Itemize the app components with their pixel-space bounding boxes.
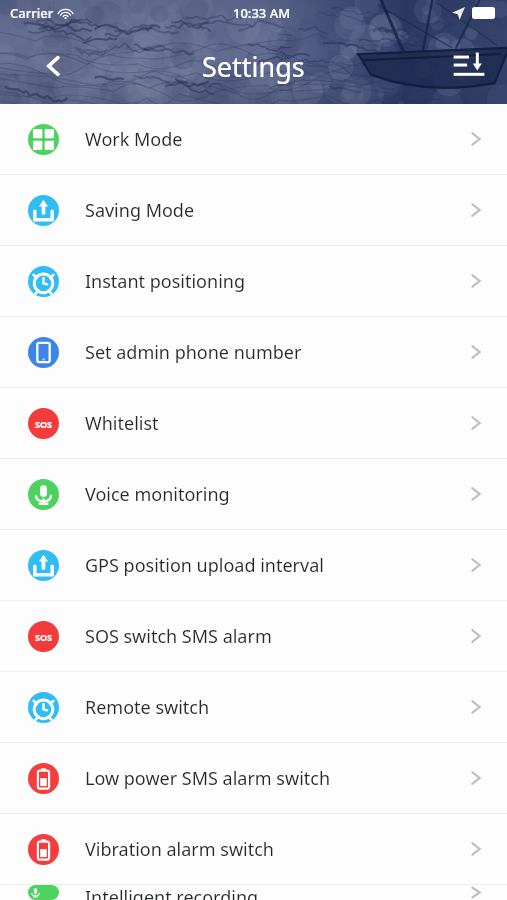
staticText: Low power SMS alarm switch (85, 766, 467, 791)
button[interactable]: Back (34, 46, 74, 86)
button[interactable]: Remote switch (0, 672, 507, 742)
staticText: SOS switch SMS alarm (85, 624, 467, 649)
button[interactable]: Vibration alarm switch (0, 814, 507, 884)
button[interactable]: SOS (0, 601, 507, 671)
button[interactable]: Intelligent recording (0, 885, 507, 900)
staticText: Voice monitoring (85, 482, 467, 507)
staticText: Saving Mode (85, 198, 467, 223)
button[interactable]: SOS (0, 388, 507, 458)
staticText: Remote switch (85, 695, 467, 720)
staticText: 10:33 AM (233, 4, 291, 22)
button[interactable]: Low power SMS alarm switch (0, 743, 507, 813)
staticText: Vibration alarm switch (85, 837, 467, 862)
button[interactable]: Instant positioning (0, 246, 507, 316)
staticText: Settings (202, 48, 305, 85)
staticText: Instant positioning (85, 269, 467, 294)
staticText: Intelligent recording (85, 885, 467, 900)
button[interactable]: GPS position upload interval (0, 530, 507, 600)
button[interactable]: Voice monitoring (0, 459, 507, 529)
staticText: Set admin phone number (85, 340, 467, 365)
button[interactable]: Saving Mode (0, 175, 507, 245)
button[interactable]: Set admin phone number (0, 317, 507, 387)
button[interactable]: Work Mode (0, 104, 507, 174)
staticText: SOS (35, 631, 53, 643)
staticText: GPS position upload interval (85, 553, 467, 578)
button[interactable]: Sort (447, 44, 491, 88)
staticText: Carrier (10, 4, 54, 22)
staticText: Whitelist (85, 411, 467, 436)
staticText: SOS (35, 418, 53, 430)
staticText: Work Mode (85, 127, 467, 152)
